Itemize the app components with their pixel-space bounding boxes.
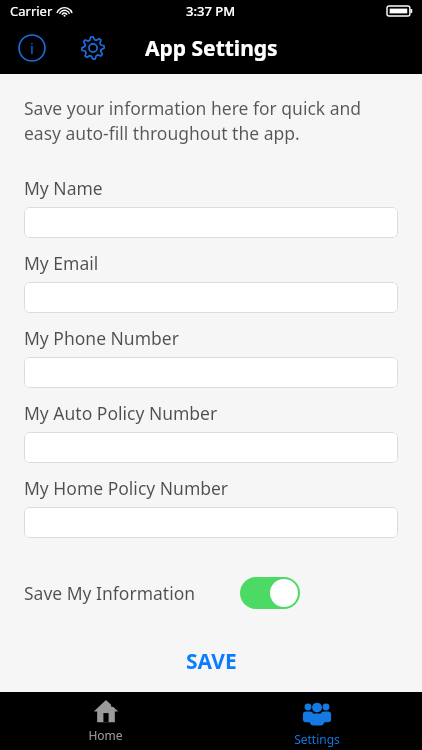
button[interactable]: Save My Information toggle <box>240 577 300 609</box>
staticText: Home <box>88 727 123 743</box>
staticText: SAVE <box>186 647 237 676</box>
staticText: Save your information here for quick and… <box>24 96 362 146</box>
staticText: Save My Information <box>24 581 196 605</box>
button[interactable]: Info <box>12 28 52 68</box>
button[interactable]: My Auto Policy Number <box>24 432 398 463</box>
staticText: My Auto Policy Number <box>24 401 218 425</box>
staticText: Settings <box>294 731 340 747</box>
button[interactable]: My Email <box>24 282 398 313</box>
button[interactable]: Settings <box>73 28 113 68</box>
staticText: My Phone Number <box>24 326 179 350</box>
button[interactable]: SAVE <box>164 641 259 682</box>
button[interactable]: Home <box>0 692 211 750</box>
button[interactable]: My Home Policy Number <box>24 507 398 538</box>
staticText: 3:37 PM <box>186 2 236 20</box>
staticText: My Home Policy Number <box>24 476 229 500</box>
button[interactable]: My Phone Number <box>24 357 398 388</box>
staticText: My Name <box>24 176 103 200</box>
staticText: i <box>30 38 34 58</box>
button[interactable]: My Name <box>24 207 398 238</box>
staticText: Carrier <box>10 2 53 20</box>
staticText: App Settings <box>145 34 278 63</box>
button[interactable]: Settings <box>211 692 422 750</box>
staticText: My Email <box>24 251 99 275</box>
